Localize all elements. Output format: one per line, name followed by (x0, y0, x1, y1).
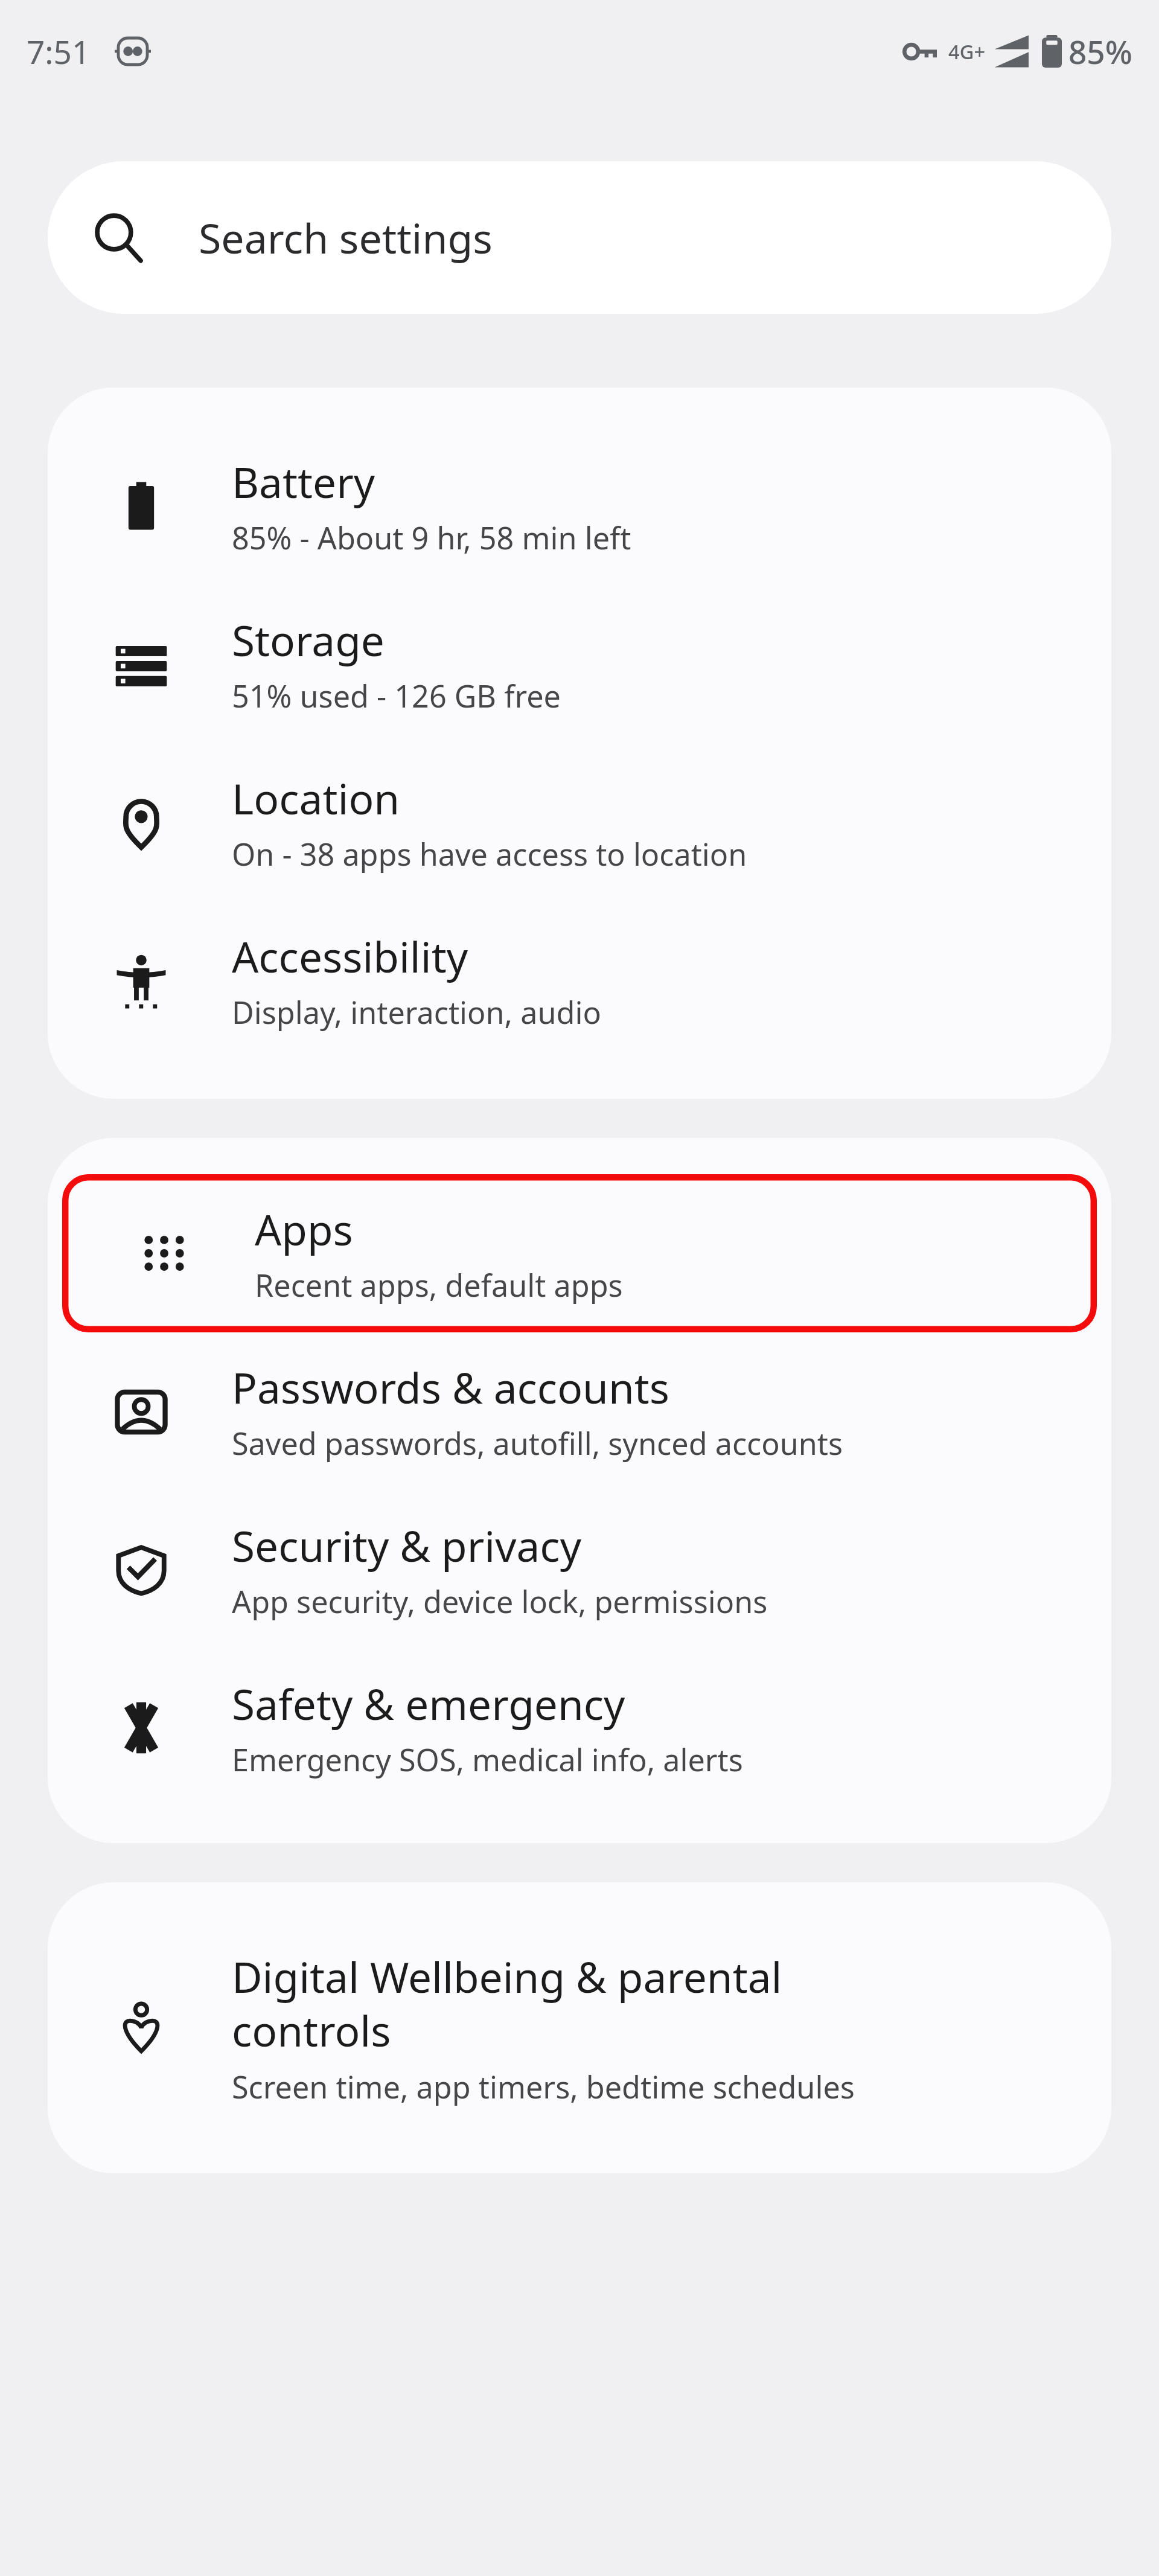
other: Safety and emergency (113, 1700, 169, 1756)
other: Passwords and accounts (113, 1384, 169, 1439)
other: Digital Wellbeing and parental controls (113, 2000, 169, 2056)
staticText: Emergency SOS, medical info, alerts (232, 1739, 743, 1780)
button[interactable]: Battery (48, 427, 1111, 585)
staticText: Recent apps, default apps (255, 1264, 623, 1306)
staticText: On - 38 apps have access to location (232, 833, 747, 875)
button[interactable]: Location (48, 743, 1111, 901)
button[interactable]: Apps (62, 1174, 1097, 1332)
staticText: 85% (1068, 30, 1132, 73)
staticText: Display, interaction, audio (232, 991, 601, 1033)
other: Location (113, 794, 169, 850)
staticText: Screen time, app timers, bedtime schedul… (232, 2066, 855, 2108)
button[interactable]: Security and privacy (48, 1491, 1111, 1649)
staticText: Storage (232, 612, 1072, 668)
other: Battery (113, 478, 169, 534)
staticText: App security, device lock, permissions (232, 1580, 768, 1622)
staticText: Search settings (199, 209, 493, 266)
staticText: Location (232, 770, 1072, 826)
button[interactable]: Passwords and accounts (48, 1332, 1111, 1491)
staticText: 51% used - 126 GB free (232, 675, 561, 717)
staticText: Digital Wellbeing & parental controls (232, 1948, 889, 2059)
staticText: Accessibility (232, 928, 1072, 985)
staticText: 85% - About 9 hr, 58 min left (232, 517, 631, 558)
button[interactable]: Storage (48, 585, 1111, 743)
other: Apps (136, 1226, 192, 1281)
staticText: 7:51 (27, 30, 91, 73)
button[interactable]: Safety and emergency (48, 1649, 1111, 1807)
staticText: Battery (232, 453, 1072, 510)
staticText: 4G+ (948, 38, 986, 65)
other: Accessibility (113, 953, 169, 1008)
staticText: Security & privacy (232, 1517, 1072, 1574)
staticText: Passwords & accounts (232, 1359, 1072, 1416)
staticText: Saved passwords, autofill, synced accoun… (232, 1422, 843, 1464)
button[interactable]: Accessibility (48, 901, 1111, 1059)
button[interactable]: Search settings (48, 161, 1111, 314)
other: Storage (113, 636, 169, 692)
staticText: Apps (255, 1201, 1058, 1258)
button[interactable]: Digital Wellbeing and parental controls (48, 1922, 1111, 2134)
button[interactable]: Apps (62, 1174, 1097, 1332)
staticText: Safety & emergency (232, 1675, 1072, 1732)
other: Security and privacy (113, 1542, 169, 1597)
